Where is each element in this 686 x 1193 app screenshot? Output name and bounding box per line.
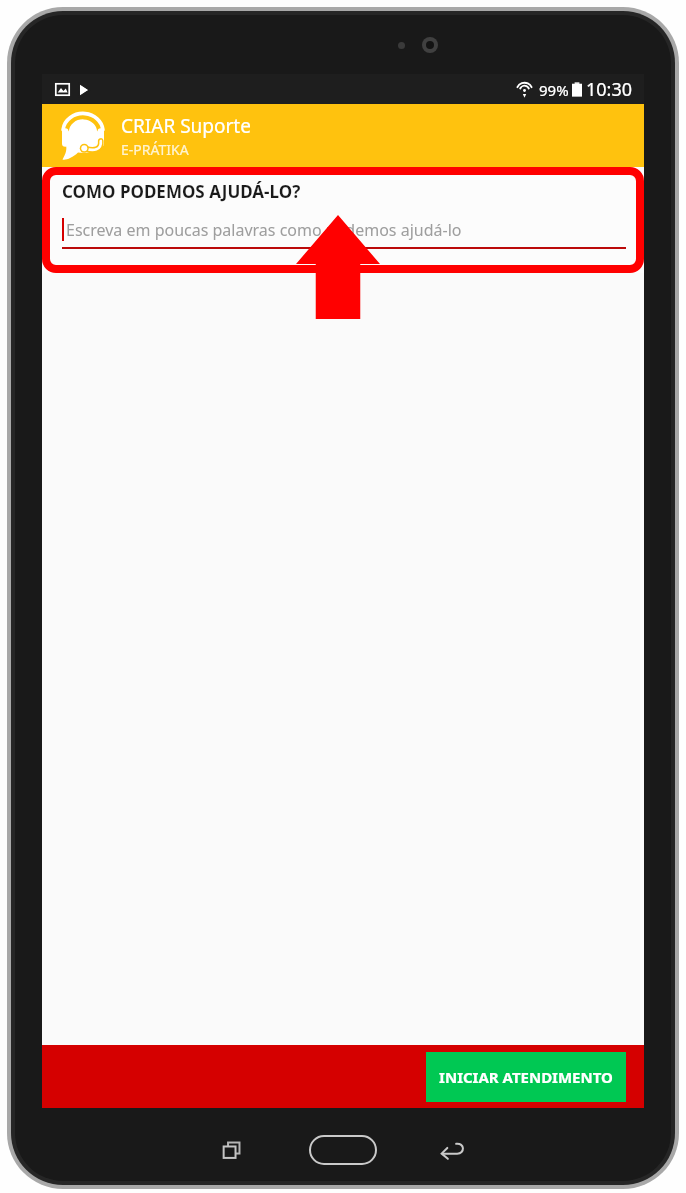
button[interactable]: Recent apps xyxy=(206,1124,258,1176)
staticText: CRIAR Suporte xyxy=(121,113,251,139)
staticText: 99% xyxy=(539,80,569,100)
button[interactable]: INICIAR ATENDIMENTO xyxy=(426,1052,626,1102)
button[interactable]: Escreva em poucas palavras como podemos … xyxy=(62,218,626,258)
staticText: INICIAR ATENDIMENTO xyxy=(439,1067,613,1087)
staticText: 10:30 xyxy=(586,77,633,102)
staticText: COMO PODEMOS AJUDÁ-LO? xyxy=(62,180,301,203)
button[interactable]: Back xyxy=(426,1124,478,1176)
button[interactable]: Home xyxy=(302,1124,384,1176)
staticText: E-PRÁTIKA xyxy=(121,140,189,159)
button[interactable]: CRIAR Suporte xyxy=(42,104,644,167)
staticText: Escreva em poucas palavras como podemos … xyxy=(66,219,462,241)
